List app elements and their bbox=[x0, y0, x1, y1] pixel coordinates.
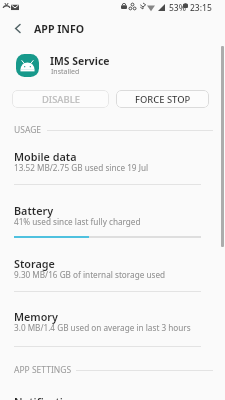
staticText: USAGE bbox=[14, 124, 42, 136]
staticText: 53% bbox=[169, 2, 186, 14]
button[interactable]: DISABLE bbox=[12, 90, 109, 108]
button[interactable]: Back bbox=[7, 18, 27, 38]
staticText: 23:15 bbox=[190, 2, 212, 14]
button[interactable] bbox=[0, 141, 225, 191]
staticText: IMS Service bbox=[50, 54, 110, 68]
staticText: 41% used since last fully charged bbox=[14, 216, 141, 227]
staticText: Memory bbox=[14, 309, 58, 324]
button[interactable] bbox=[0, 301, 225, 351]
staticText: Mobile data bbox=[14, 149, 77, 164]
staticText: Notifications bbox=[14, 394, 82, 400]
staticText: FORCE STOP bbox=[135, 93, 191, 106]
staticText: 13.52 MB/2.75 GB used since 19 Jul bbox=[14, 162, 149, 173]
staticText: Battery bbox=[14, 203, 54, 218]
staticText: APP INFO bbox=[34, 22, 85, 36]
button[interactable]: FORCE STOP bbox=[116, 90, 209, 108]
staticText: 3.0 MB/1.4 GB used on average in last 3 … bbox=[14, 322, 191, 333]
staticText: Installed bbox=[51, 67, 80, 77]
button[interactable] bbox=[0, 248, 225, 298]
staticText: Storage bbox=[14, 256, 55, 271]
staticText: 9.30 MB/16 GB of internal storage used bbox=[14, 269, 166, 280]
staticText: APP SETTINGS bbox=[14, 364, 72, 376]
staticText: DISABLE bbox=[42, 93, 80, 106]
button[interactable] bbox=[0, 195, 225, 245]
